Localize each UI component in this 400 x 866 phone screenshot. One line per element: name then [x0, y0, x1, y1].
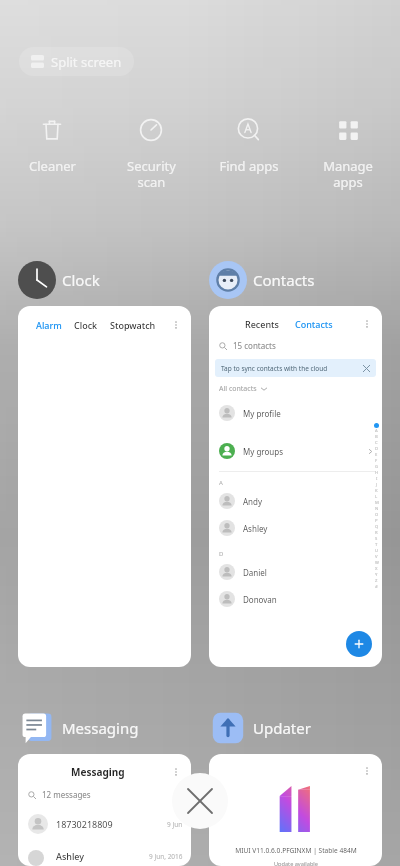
button[interactable]: Messaging: [18, 754, 191, 866]
staticText: Messaging: [62, 718, 139, 738]
other: More options: [360, 317, 374, 331]
button[interactable]: Contacts: [209, 258, 315, 302]
staticText: My profile: [243, 408, 281, 419]
staticText: Z: [375, 578, 378, 584]
staticText: D: [375, 446, 379, 452]
staticText: K: [375, 488, 378, 494]
staticText: #: [375, 584, 378, 590]
staticText: H: [375, 470, 379, 476]
button[interactable]: Tap to sync contacts with the cloud: [215, 359, 376, 377]
staticText: V: [375, 554, 378, 560]
staticText: Daniel: [243, 567, 267, 578]
staticText: Clock: [74, 319, 98, 331]
other: More options: [360, 764, 374, 778]
staticText: S: [375, 536, 378, 542]
staticText: N: [375, 506, 379, 512]
staticText: O: [375, 512, 379, 518]
staticText: W: [375, 560, 379, 566]
staticText: 9 Jun: [167, 820, 183, 829]
staticText: E: [375, 452, 378, 458]
staticText: 9 Jun, 2016: [149, 852, 183, 861]
staticText: X: [375, 566, 378, 572]
staticText: B: [375, 434, 378, 440]
button[interactable]: My profile: [209, 405, 382, 421]
button[interactable]: Clock: [18, 258, 100, 302]
staticText: Great! I'll meet you downstairs in ten m…: [56, 865, 183, 866]
other: More options: [169, 765, 183, 779]
button[interactable]: Cleaner: [6, 104, 98, 175]
staticText: Contacts: [253, 270, 315, 290]
button[interactable]: Updater: [209, 706, 311, 750]
staticText: Cleaner: [29, 157, 76, 175]
button[interactable]: Manage apps: [302, 104, 394, 190]
staticText: Recents: [245, 318, 279, 330]
button[interactable]: Add contact: [346, 631, 372, 657]
staticText: R: [375, 530, 378, 536]
staticText: Andy: [243, 496, 263, 507]
staticText: Donovan: [243, 594, 277, 605]
staticText: M: [375, 500, 379, 506]
staticText: C: [375, 440, 378, 446]
staticText: Security scan: [127, 157, 176, 190]
staticText: G: [375, 464, 379, 470]
staticText: D: [219, 550, 224, 558]
staticText: Q: [375, 524, 379, 530]
staticText: Updater: [253, 718, 311, 738]
staticText: P: [375, 518, 378, 524]
button[interactable]: Messaging: [18, 706, 139, 750]
staticText: 18730218809: [56, 818, 113, 830]
button[interactable]: Andy: [209, 493, 382, 509]
button[interactable]: Daniel: [209, 564, 382, 580]
staticText: L: [375, 494, 378, 500]
button[interactable]: Recents: [209, 306, 382, 667]
staticText: Alarm: [36, 319, 62, 331]
staticText: My groups: [243, 446, 284, 457]
button[interactable]: Security scan: [105, 104, 197, 190]
staticText: Manage apps: [323, 157, 373, 190]
staticText: Stopwatch: [110, 319, 156, 331]
staticText: Y: [375, 572, 378, 578]
staticText: Contacts: [295, 318, 333, 330]
staticText: Find apps: [219, 157, 279, 175]
staticText: MIUI V11.0.6.0.PFGINXM | Stable 484M: [235, 846, 357, 855]
staticText: Ashley: [56, 850, 85, 862]
staticText: F: [375, 458, 378, 464]
staticText: All contacts: [219, 384, 257, 394]
staticText: Ashley: [243, 523, 268, 534]
button[interactable]: My groups: [209, 443, 382, 459]
other: More options: [169, 318, 183, 332]
button[interactable]: Find apps: [203, 104, 295, 175]
button[interactable]: Split screen: [19, 47, 134, 76]
staticText: A: [219, 479, 223, 487]
staticText: T: [375, 542, 378, 548]
button[interactable]: Ashley: [18, 850, 191, 866]
button[interactable]: More options: [209, 754, 382, 866]
staticText: Split screen: [51, 53, 122, 71]
staticText: 15 contacts: [233, 340, 276, 351]
button[interactable]: Donovan: [209, 591, 382, 607]
staticText: Messaging: [71, 765, 125, 779]
staticText: I: [376, 476, 378, 482]
staticText: Update available: [274, 860, 318, 866]
button[interactable]: Ashley: [209, 520, 382, 536]
staticText: U: [375, 548, 379, 554]
button[interactable]: Close all: [172, 773, 228, 829]
staticText: 12 messages: [42, 789, 91, 800]
staticText: J: [376, 482, 378, 488]
staticText: Tap to sync contacts with the cloud: [221, 364, 328, 373]
button[interactable]: Alarm: [18, 306, 191, 667]
button[interactable]: 18730218809: [18, 814, 191, 834]
staticText: A: [375, 428, 378, 434]
staticText: Clock: [62, 270, 100, 290]
